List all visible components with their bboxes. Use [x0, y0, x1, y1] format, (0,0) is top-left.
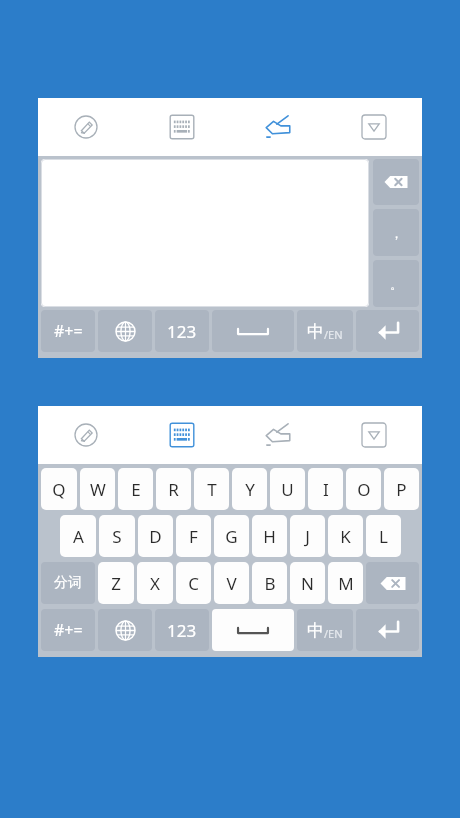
button[interactable]: Space [212, 310, 294, 352]
button[interactable]: 中 [297, 609, 353, 651]
staticText: 123 [167, 619, 197, 642]
staticText: J [305, 525, 310, 548]
staticText: 分词 [54, 574, 82, 592]
staticText: /EN [324, 626, 343, 641]
button[interactable]: Hide keyboard [326, 98, 422, 156]
staticText: Y [245, 478, 255, 501]
button[interactable]: Z [98, 562, 134, 604]
staticText: #+= [54, 320, 83, 342]
button[interactable]: Hide keyboard [326, 406, 422, 464]
button[interactable]: ， [373, 209, 419, 256]
staticText: F [189, 525, 198, 548]
button[interactable]: Handwriting input [230, 98, 326, 156]
button[interactable]: Clear handwriting [38, 98, 134, 156]
staticText: V [226, 572, 237, 595]
staticText: 中 [307, 321, 324, 342]
button[interactable]: E [118, 468, 153, 510]
button[interactable]: F [176, 515, 211, 557]
button[interactable]: C [176, 562, 211, 604]
button[interactable]: L [366, 515, 401, 557]
button[interactable]: J [290, 515, 325, 557]
button[interactable]: B [252, 562, 287, 604]
staticText: M [338, 572, 354, 595]
staticText: L [379, 525, 388, 548]
staticText: Z [111, 572, 121, 595]
button[interactable]: P [384, 468, 419, 510]
staticText: G [225, 525, 238, 548]
button[interactable]: 123 [155, 609, 209, 651]
button[interactable]: 。 [373, 260, 419, 307]
staticText: 123 [167, 320, 197, 343]
button[interactable]: I [308, 468, 343, 510]
button[interactable]: Q [41, 468, 77, 510]
button[interactable]: W [80, 468, 115, 510]
staticText: #+= [54, 619, 83, 641]
button[interactable]: R [156, 468, 191, 510]
button[interactable]: 123 [155, 310, 209, 352]
staticText: P [396, 478, 407, 501]
button[interactable]: Keyboard input [134, 406, 230, 464]
button[interactable]: K [328, 515, 363, 557]
staticText: W [90, 478, 106, 501]
staticText: /EN [324, 327, 343, 342]
button[interactable]: T [194, 468, 229, 510]
button[interactable]: O [346, 468, 381, 510]
staticText: Q [52, 478, 66, 501]
button[interactable]: V [214, 562, 249, 604]
button[interactable]: Enter [356, 609, 419, 651]
staticText: 。 [390, 276, 403, 292]
staticText: U [281, 478, 294, 501]
button[interactable]: Space [212, 609, 294, 651]
staticText: R [168, 478, 179, 501]
staticText: 中 [307, 620, 324, 641]
button[interactable]: Enter [356, 310, 419, 352]
button[interactable]: Clear handwriting [38, 406, 134, 464]
staticText: I [323, 478, 329, 501]
button[interactable]: Backspace [366, 562, 419, 604]
button[interactable]: S [99, 515, 135, 557]
button[interactable]: Y [232, 468, 267, 510]
staticText: H [263, 525, 276, 548]
button[interactable]: Handwriting input [230, 406, 326, 464]
button[interactable]: 中 [297, 310, 353, 352]
staticText: B [264, 572, 276, 595]
button[interactable]: A [60, 515, 96, 557]
staticText: N [301, 572, 314, 595]
staticText: A [73, 525, 84, 548]
staticText: D [149, 525, 162, 548]
button[interactable]: G [214, 515, 249, 557]
staticText: ， [390, 225, 403, 241]
button[interactable]: N [290, 562, 325, 604]
button[interactable]: 分词 [41, 562, 95, 604]
staticText: K [340, 525, 351, 548]
button[interactable]: Switch language [98, 310, 152, 352]
button[interactable]: M [328, 562, 363, 604]
staticText: O [357, 478, 371, 501]
button[interactable]: U [270, 468, 305, 510]
button[interactable]: Keyboard input [134, 98, 230, 156]
button[interactable]: Backspace [373, 159, 419, 205]
button[interactable]: H [252, 515, 287, 557]
button[interactable]: #+= [41, 310, 95, 352]
staticText: S [112, 525, 122, 548]
staticText: X [150, 572, 160, 595]
staticText: C [188, 572, 199, 595]
button[interactable]: Switch language [98, 609, 152, 651]
button[interactable]: Handwriting area [41, 159, 369, 307]
button[interactable]: D [138, 515, 173, 557]
staticText: E [131, 478, 141, 501]
button[interactable]: X [137, 562, 173, 604]
staticText: T [207, 478, 217, 501]
button[interactable]: #+= [41, 609, 95, 651]
